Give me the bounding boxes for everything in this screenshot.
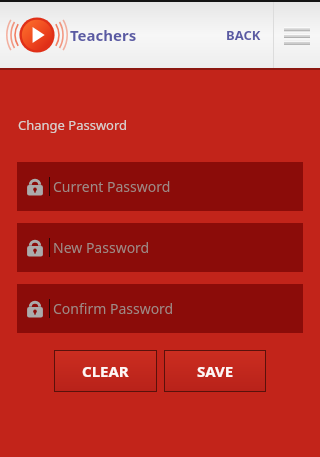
button[interactable]: BACK xyxy=(214,12,273,58)
staticText: Change Password xyxy=(18,116,128,134)
button[interactable]: Confirm Password xyxy=(17,284,303,333)
button[interactable]: Menu xyxy=(274,2,320,68)
staticText: New Password xyxy=(53,238,150,257)
button[interactable]: SAVE xyxy=(165,351,265,391)
staticText: SAVE xyxy=(197,361,234,381)
button[interactable]: Current Password xyxy=(17,162,303,211)
staticText: CLEAR xyxy=(82,361,129,381)
staticText: Current Password xyxy=(53,177,171,196)
staticText: Confirm Password xyxy=(53,299,174,318)
staticText: BACK xyxy=(226,26,261,44)
button[interactable]: CLEAR xyxy=(55,351,156,391)
button[interactable]: Logo xyxy=(10,13,64,57)
button[interactable]: New Password xyxy=(17,223,303,272)
staticText: Teachers xyxy=(70,25,137,45)
